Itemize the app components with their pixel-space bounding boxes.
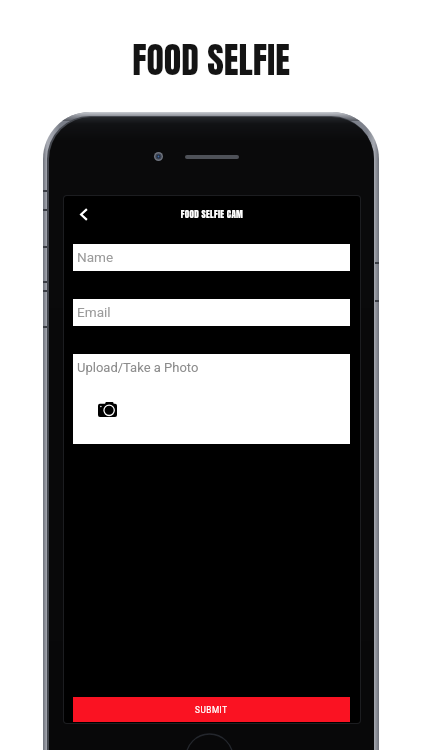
staticText: Email xyxy=(77,304,111,320)
button[interactable]: Name xyxy=(73,244,350,271)
button[interactable]: Back xyxy=(73,203,95,225)
button[interactable]: Email xyxy=(73,299,350,326)
staticText: FOOD SELFIE xyxy=(0,33,422,87)
button[interactable]: Upload/Take a Photo xyxy=(73,354,350,444)
staticText: FOOD SELFIE CAM xyxy=(64,207,360,221)
staticText: SUBMIT xyxy=(195,705,228,715)
button[interactable]: SUBMIT xyxy=(73,697,350,722)
staticText: Upload/Take a Photo xyxy=(77,360,199,375)
staticText: Name xyxy=(77,249,114,265)
